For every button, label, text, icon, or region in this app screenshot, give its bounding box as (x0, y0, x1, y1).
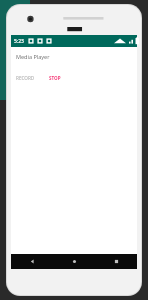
button[interactable]: Recent apps (95, 254, 137, 269)
button[interactable]: STOP (46, 73, 64, 83)
button[interactable]: Home (53, 254, 95, 269)
staticText: Media Player (16, 53, 50, 60)
staticText: RECORD (16, 75, 35, 81)
staticText: STOP (49, 75, 61, 81)
staticText: 5:23 (14, 38, 24, 45)
button[interactable]: RECORD (13, 73, 38, 83)
button[interactable]: Back (11, 254, 53, 269)
